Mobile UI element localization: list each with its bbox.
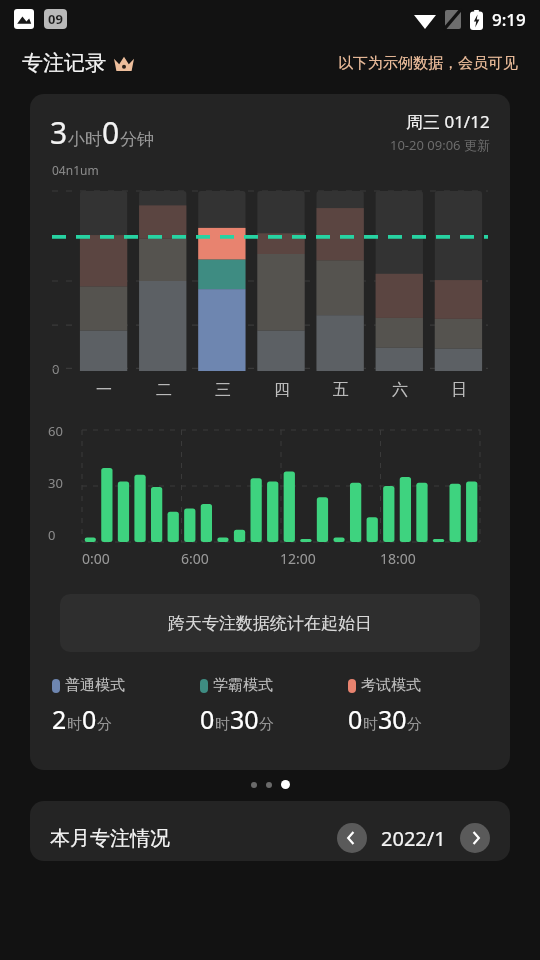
staticText: 60 [48,422,63,440]
staticText: 30 [230,702,259,736]
staticText: 2022/1 [381,825,446,852]
button[interactable] [251,782,257,788]
staticText: 6:00 [181,549,209,568]
staticText: 分 [259,715,274,734]
button[interactable]: Previous month [337,823,367,853]
staticText: 时 [215,715,230,734]
staticText: 0 [48,526,56,544]
staticText: 本月专注情况 [50,826,170,851]
staticText: 五 [333,380,349,400]
staticText: 09 [48,10,63,28]
staticText: 六 [392,380,408,400]
staticText: 三 [215,380,231,400]
staticText: 周三 01/12 [406,110,490,133]
staticText: 分 [97,715,112,734]
staticText: 一 [96,380,112,400]
staticText: 学霸模式 [213,676,273,695]
button[interactable]: 跨天专注数据统计在起始日 [60,594,480,652]
staticText: 0:00 [82,549,110,568]
staticText: 小时 [68,129,102,150]
staticText: 跨天专注数据统计在起始日 [168,613,372,634]
staticText: 18:00 [380,549,416,568]
button[interactable]: Next month [460,823,490,853]
staticText: 3 [50,112,68,153]
staticText: 时 [67,715,82,734]
button[interactable]: 考试模式 [348,676,496,736]
staticText: 0 [200,702,215,736]
staticText: 0 [82,702,97,736]
staticText: 二 [156,380,172,400]
staticText: 12:00 [280,549,316,568]
staticText: 以下为示例数据，会员可见 [338,54,518,73]
button[interactable]: 普通模式 [52,676,200,736]
staticText: 四 [274,380,290,400]
staticText: 日 [451,380,467,400]
staticText: 普通模式 [65,676,125,695]
button[interactable] [266,782,272,788]
staticText: 9:19 [492,8,526,31]
staticText: 04n1um [52,162,99,178]
staticText: 30 [48,474,63,492]
staticText: 10-20 09:06 更新 [390,136,490,154]
staticText: 分钟 [120,129,154,150]
staticText: 0 [102,112,120,153]
staticText: 2 [52,702,67,736]
staticText: 分 [407,715,422,734]
staticText: 专注记录 [22,50,106,76]
button[interactable] [281,780,290,789]
staticText: 30 [378,702,407,736]
staticText: 0 [52,360,60,378]
staticText: 时 [363,715,378,734]
staticText: 0 [348,702,363,736]
staticText: 考试模式 [361,676,421,695]
button[interactable]: 学霸模式 [200,676,348,736]
